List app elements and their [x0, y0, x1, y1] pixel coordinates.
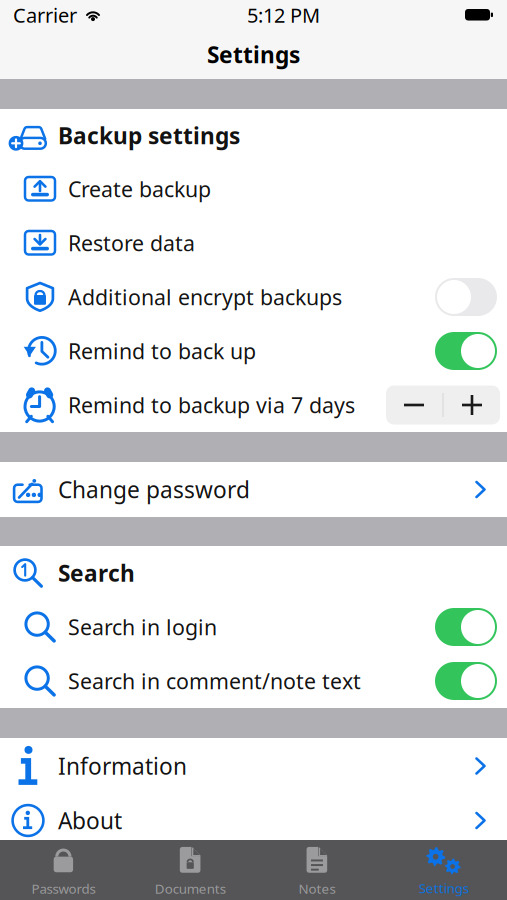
- staticText: Additional encrypt backups: [68, 283, 342, 311]
- button[interactable]: Remind to backup via 7 days: [0, 378, 507, 432]
- staticText: Create backup: [68, 175, 211, 203]
- button[interactable]: Information: [0, 738, 507, 794]
- staticText: Remind to back up: [68, 337, 256, 365]
- staticText: Settings: [419, 879, 469, 897]
- staticText: Information: [58, 751, 187, 781]
- button[interactable]: Documents: [127, 840, 254, 900]
- staticText: Notes: [298, 880, 335, 897]
- button[interactable]: Disabled: [435, 278, 497, 316]
- button[interactable]: About: [0, 794, 507, 847]
- staticText: Carrier: [13, 2, 77, 28]
- button[interactable]: Search in login: [0, 600, 507, 654]
- button[interactable]: Remind to back up: [0, 324, 507, 378]
- staticText: Restore data: [68, 229, 195, 257]
- button[interactable]: Restore data: [0, 216, 507, 270]
- staticText: Remind to backup via 7 days: [68, 391, 355, 419]
- button[interactable]: Change password: [0, 462, 507, 517]
- staticText: About: [58, 805, 122, 835]
- staticText: Change password: [58, 474, 250, 504]
- button[interactable]: Enabled: [435, 662, 497, 700]
- staticText: Search in comment/note text: [68, 667, 361, 695]
- button[interactable]: Search: [0, 546, 507, 600]
- button[interactable]: Notes: [253, 840, 380, 900]
- staticText: Documents: [155, 880, 226, 897]
- button[interactable]: Backup settings: [0, 109, 507, 162]
- button[interactable]: Enabled: [435, 608, 497, 646]
- staticText: Settings: [207, 39, 300, 69]
- button[interactable]: Increase: [444, 385, 500, 424]
- button[interactable]: Search in comment/note text: [0, 654, 507, 708]
- button[interactable]: Enabled: [435, 332, 497, 370]
- staticText: 5:12 PM: [247, 2, 320, 28]
- staticText: Search in login: [68, 613, 217, 641]
- staticText: Backup settings: [58, 120, 240, 150]
- button[interactable]: Additional encrypt backups: [0, 270, 507, 324]
- button[interactable]: Decrease: [386, 385, 442, 424]
- staticText: Passwords: [31, 880, 95, 897]
- staticText: Search: [58, 558, 135, 588]
- button[interactable]: Settings: [380, 840, 507, 900]
- button[interactable]: Passwords: [0, 840, 127, 900]
- button[interactable]: Create backup: [0, 162, 507, 216]
